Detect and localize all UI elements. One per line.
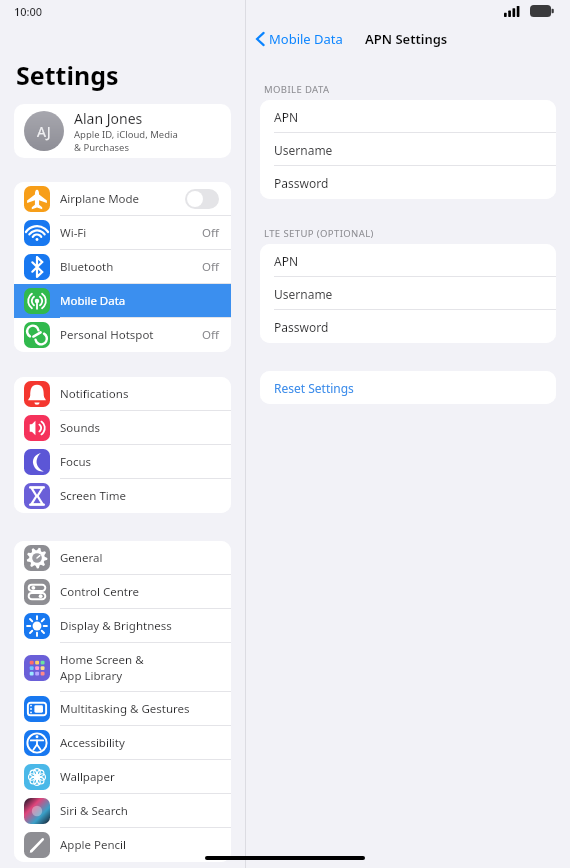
button[interactable]: Apple Pencil [14, 828, 231, 862]
staticText: Alan Jones [74, 109, 143, 128]
staticText: Wallpaper [60, 769, 115, 785]
button[interactable]: Password [260, 310, 556, 343]
other: Back [256, 31, 265, 47]
button[interactable]: Screen Time [14, 479, 231, 513]
button[interactable]: Bluetooth [14, 250, 231, 284]
button[interactable]: Back [256, 30, 343, 48]
button[interactable]: Home Screen & [14, 643, 231, 692]
button[interactable]: Accessibility [14, 726, 231, 760]
staticText: Focus [60, 454, 92, 470]
staticText: & Purchases [74, 141, 129, 154]
staticText: Apple ID, iCloud, Media [74, 128, 178, 141]
button[interactable]: AJ [14, 104, 231, 158]
staticText: AJ [37, 122, 51, 141]
button[interactable]: Mobile Data [14, 284, 231, 318]
staticText: App Library [60, 668, 123, 684]
staticText: Apple Pencil [60, 837, 126, 853]
staticText: Bluetooth [60, 259, 114, 275]
staticText: Multitasking & Gestures [60, 701, 190, 717]
button[interactable]: APN [260, 100, 556, 133]
staticText: Control Centre [60, 584, 139, 600]
staticText: APN [274, 253, 299, 269]
button[interactable]: Wi-Fi [14, 216, 231, 250]
staticText: Home Screen & [60, 652, 144, 668]
staticText: Password [274, 175, 329, 191]
staticText: Password [274, 319, 329, 335]
button[interactable]: Focus [14, 445, 231, 479]
staticText: General [60, 550, 103, 566]
staticText: APN [274, 109, 299, 125]
button[interactable]: Notifications [14, 377, 231, 411]
staticText: Mobile Data [269, 30, 343, 48]
staticText: APN Settings [365, 30, 448, 48]
button[interactable]: Sounds [14, 411, 231, 445]
staticText: Airplane Mode [60, 191, 140, 207]
button[interactable]: Username [260, 133, 556, 166]
staticText: Mobile Data [60, 293, 126, 309]
staticText: Screen Time [60, 488, 127, 504]
staticText: 10:00 [14, 4, 43, 19]
button[interactable]: Username [260, 277, 556, 310]
staticText: Username [274, 286, 333, 302]
button[interactable]: Wallpaper [14, 760, 231, 794]
staticText: Display & Brightness [60, 618, 172, 634]
button[interactable]: Multitasking & Gestures [14, 692, 231, 726]
button[interactable]: Reset Settings [260, 371, 556, 404]
staticText: Wi-Fi [60, 225, 87, 241]
staticText: Reset Settings [274, 380, 354, 396]
staticText: Personal Hotspot [60, 327, 154, 343]
button[interactable]: Control Centre [14, 575, 231, 609]
staticText: LTE SETUP (OPTIONAL) [264, 227, 374, 240]
staticText: Accessibility [60, 735, 125, 751]
staticText: Off [202, 225, 219, 241]
button[interactable]: APN [260, 244, 556, 277]
button[interactable]: General [14, 541, 231, 575]
staticText: Settings [16, 58, 119, 92]
staticText: MOBILE DATA [264, 83, 330, 96]
staticText: Username [274, 142, 333, 158]
staticText: Siri & Search [60, 803, 128, 819]
staticText: Off [202, 259, 219, 275]
staticText: Off [202, 327, 219, 343]
button[interactable]: Siri & Search [14, 794, 231, 828]
button[interactable]: Airplane Mode [14, 182, 231, 216]
staticText: Notifications [60, 386, 129, 402]
button[interactable]: Airplane Mode toggle [185, 189, 219, 209]
button[interactable]: Display & Brightness [14, 609, 231, 643]
button[interactable]: Password [260, 166, 556, 199]
button[interactable]: Personal Hotspot [14, 318, 231, 352]
staticText: Sounds [60, 420, 101, 436]
